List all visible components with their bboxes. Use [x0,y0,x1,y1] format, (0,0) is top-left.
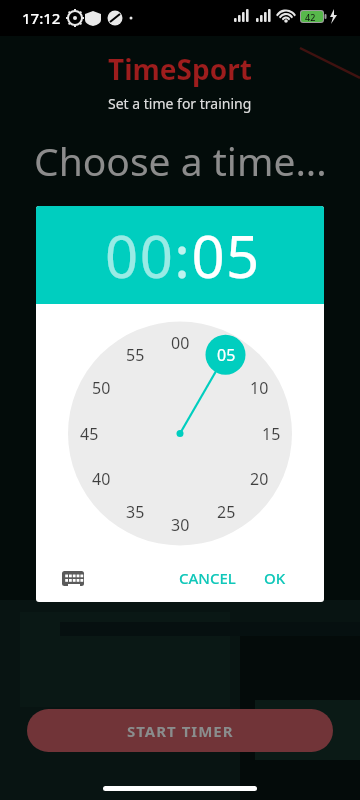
staticText: Choose a time... [34,134,327,187]
staticText: 42 [305,11,316,23]
staticText: START TIMER [127,721,234,741]
button[interactable]: START TIMER [27,709,333,752]
staticText: 05 [217,344,236,366]
staticText: 00:05 [105,216,261,295]
staticText: Set a time for training [108,94,252,113]
staticText: 50 [92,377,111,399]
staticText: 55 [126,344,145,366]
button[interactable] [62,571,84,586]
staticText: 15 [262,423,281,445]
staticText: TimeSport [108,50,252,88]
staticText: 25 [217,501,236,523]
staticText: 00 [171,332,190,354]
staticText: 40 [92,468,111,490]
staticText: 35 [126,501,145,523]
staticText: OK [264,568,286,588]
staticText: 20 [250,468,269,490]
staticText: 30 [171,514,190,536]
staticText: 10 [250,377,269,399]
button[interactable]: OK [256,560,294,596]
staticText: 17:12 [22,8,61,28]
button[interactable]: CANCEL [171,560,244,596]
staticText: CANCEL [179,568,236,588]
staticText: 45 [80,423,99,445]
